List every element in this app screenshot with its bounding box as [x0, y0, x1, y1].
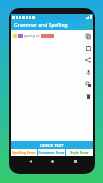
button[interactable]: Share [84, 56, 92, 64]
button[interactable]: Translate [84, 80, 92, 88]
button[interactable]: Paste [84, 44, 92, 52]
button[interactable]: Recents [71, 157, 79, 165]
staticText: CHECK TEXT [40, 143, 64, 148]
staticText: Spelling Error [12, 150, 36, 155]
button[interactable]: Spelling Error [11, 149, 37, 156]
button[interactable]: Delete [84, 92, 92, 100]
button[interactable]: Microphone [84, 68, 92, 76]
staticText: Style Error [70, 150, 89, 155]
button[interactable]: Share [83, 21, 91, 29]
button[interactable]: Home [48, 157, 56, 165]
button[interactable]: Style Error [66, 149, 93, 156]
button[interactable]: CHECK TEXT [11, 141, 93, 149]
staticText: Grammar Error [38, 150, 65, 155]
staticText: Grammar and Spelling [14, 22, 68, 29]
staticText: going to [24, 33, 40, 38]
button[interactable]: Grammar Error [38, 149, 65, 156]
button[interactable]: Copy [84, 32, 92, 40]
button[interactable]: Back [26, 157, 34, 165]
